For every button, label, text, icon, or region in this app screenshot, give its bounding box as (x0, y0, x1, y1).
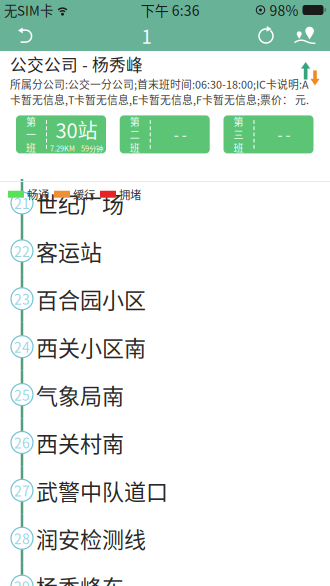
staticText: 畅通 (27, 186, 49, 202)
button[interactable]: 23 (0, 275, 330, 323)
staticText: 拥堵 (119, 186, 141, 202)
button[interactable]: Back (4, 20, 46, 51)
button[interactable]: 第 (223, 115, 313, 153)
button[interactable]: 第 (16, 115, 106, 153)
staticText: 客运站 (36, 235, 102, 267)
staticText: 气象局南 (36, 379, 124, 410)
button[interactable]: 27 (0, 466, 330, 514)
staticText: 第 (233, 114, 243, 129)
staticText: 一 (26, 127, 36, 142)
staticText: - - (277, 124, 290, 145)
staticText: 98% (269, 0, 298, 20)
button[interactable]: 22 (0, 227, 330, 275)
staticText: 第 (130, 114, 140, 129)
button[interactable]: 24 (0, 323, 330, 371)
staticText: 班 (130, 140, 140, 155)
button[interactable]: 21 (0, 179, 330, 227)
staticText: 润安检测线 (36, 522, 146, 554)
staticText: 二 (130, 127, 140, 142)
button[interactable]: 29 (0, 562, 330, 586)
staticText: 世纪广场 (36, 187, 124, 219)
staticText: 杨秀峰东 (36, 570, 124, 586)
staticText: 29 (14, 576, 30, 586)
staticText: 22 (14, 241, 30, 261)
staticText: 公交公司 - 杨秀峰 (10, 52, 143, 76)
staticText: 缓行 (73, 186, 95, 202)
staticText: 27 (14, 480, 30, 500)
staticText: 西关村南 (36, 426, 124, 458)
button[interactable]: Swap direction (0, 51, 320, 86)
staticText: 西关小区南 (36, 331, 146, 363)
staticText: 卡暂无信息,T卡暂无信息,E卡暂无信息,F卡暂无信息;票价： 元. (10, 92, 309, 107)
staticText: 21 (14, 193, 30, 213)
button[interactable]: 26 (0, 418, 330, 466)
staticText: 26 (14, 432, 30, 453)
staticText: 23 (14, 289, 30, 309)
staticText: 所属分公司:公交一分公司;首末班时间:06:30-18:00;IC卡说明:A (10, 76, 309, 92)
button[interactable]: 25 (0, 371, 330, 418)
staticText: 无SIM卡 (4, 0, 53, 20)
staticText: - - (174, 124, 187, 145)
staticText: 武警中队道口 (36, 474, 168, 506)
staticText: 第 (26, 114, 36, 129)
staticText: 30站 (55, 115, 97, 144)
staticText: 28 (14, 528, 30, 548)
staticText: 班 (26, 140, 36, 155)
staticText: 24 (14, 336, 30, 357)
staticText: 百合园小区 (36, 283, 146, 315)
staticText: 25 (14, 384, 30, 405)
staticText: 班 (233, 140, 243, 155)
staticText: 1 (141, 22, 151, 49)
staticText: 59分钟 (81, 143, 103, 154)
staticText: 三 (233, 127, 243, 142)
staticText: 7.29KM (50, 143, 75, 154)
button[interactable]: Refresh (247, 20, 285, 51)
button[interactable]: 28 (0, 514, 330, 562)
button[interactable]: Map (285, 20, 325, 51)
button[interactable]: 第 (120, 115, 210, 153)
staticText: 下午 6:36 (141, 0, 200, 20)
